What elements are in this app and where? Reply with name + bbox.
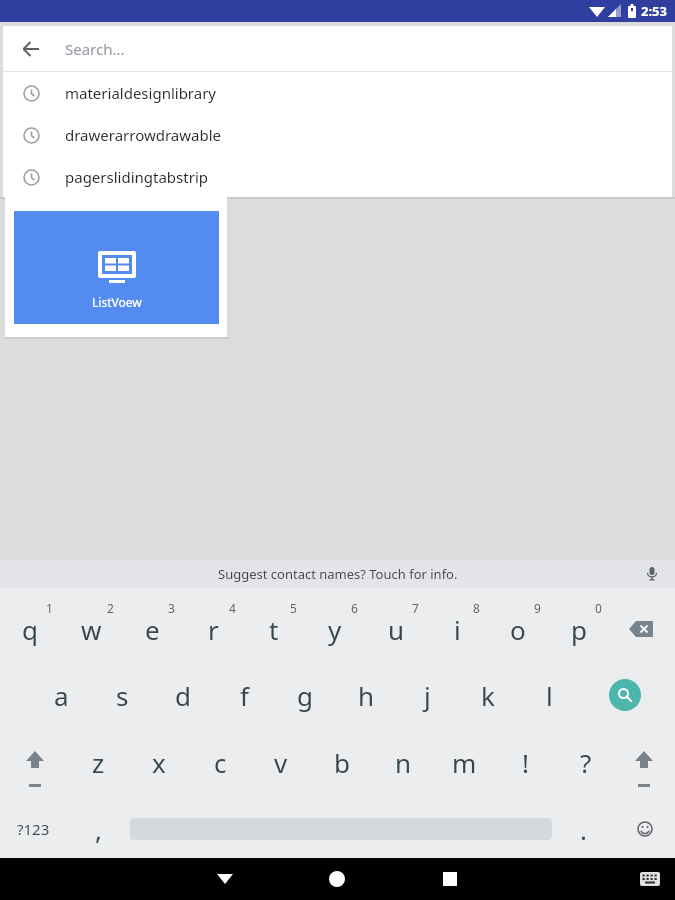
button[interactable]: q bbox=[8, 607, 52, 651]
button[interactable]: drawerarrowdrawable bbox=[3, 114, 672, 156]
button[interactable]: s bbox=[100, 673, 144, 717]
staticText: j bbox=[424, 678, 431, 713]
staticText: f bbox=[240, 678, 249, 713]
staticText: z bbox=[92, 745, 105, 780]
button[interactable]: . bbox=[561, 807, 605, 851]
staticText: r bbox=[208, 612, 219, 647]
staticText: h bbox=[358, 678, 375, 713]
button[interactable]: c bbox=[198, 740, 242, 784]
button[interactable]: e bbox=[130, 607, 174, 651]
staticText: materialdesignlibrary bbox=[65, 83, 217, 103]
button[interactable] bbox=[315, 858, 359, 900]
button[interactable]: b bbox=[320, 740, 364, 784]
button[interactable]: materialdesignlibrary bbox=[3, 72, 672, 114]
button[interactable]: t bbox=[252, 607, 296, 651]
button[interactable]: f bbox=[222, 673, 266, 717]
button[interactable]: , bbox=[76, 807, 120, 851]
staticText: u bbox=[388, 612, 405, 647]
button[interactable] bbox=[428, 858, 472, 900]
staticText: . bbox=[580, 812, 587, 847]
button[interactable]: ? bbox=[564, 740, 608, 784]
button[interactable]: a bbox=[39, 673, 83, 717]
staticText: n bbox=[395, 745, 412, 780]
button[interactable]: x bbox=[137, 740, 181, 784]
button[interactable]: m bbox=[442, 740, 486, 784]
button[interactable]: u bbox=[374, 607, 418, 651]
button[interactable]: pagerslidingtabstrip bbox=[3, 156, 672, 198]
staticText: 8 bbox=[473, 600, 480, 616]
staticText: 0 bbox=[595, 600, 602, 616]
staticText: 3 bbox=[168, 600, 175, 616]
button[interactable]: h bbox=[344, 673, 388, 717]
staticText: t bbox=[269, 612, 279, 647]
staticText: c bbox=[214, 745, 227, 780]
button[interactable] bbox=[619, 607, 663, 651]
staticText: ! bbox=[522, 745, 529, 780]
button[interactable]: ?123 bbox=[11, 807, 55, 851]
button[interactable]: y bbox=[313, 607, 357, 651]
staticText: 6 bbox=[351, 600, 358, 616]
button[interactable] bbox=[609, 679, 641, 711]
staticText: i bbox=[454, 612, 461, 647]
button[interactable] bbox=[13, 740, 57, 788]
staticText: 2 bbox=[107, 600, 114, 616]
staticText: m bbox=[452, 745, 477, 780]
staticText: o bbox=[510, 612, 526, 647]
button[interactable]: ! bbox=[503, 740, 547, 784]
button[interactable]: k bbox=[466, 673, 510, 717]
staticText: g bbox=[297, 678, 313, 713]
staticText: w bbox=[81, 612, 102, 647]
button[interactable] bbox=[203, 858, 247, 900]
staticText: l bbox=[546, 678, 553, 713]
staticText: p bbox=[571, 612, 587, 647]
button[interactable]: z bbox=[76, 740, 120, 784]
staticText: , bbox=[95, 812, 102, 847]
button[interactable]: j bbox=[405, 673, 449, 717]
staticText: e bbox=[145, 612, 160, 647]
button[interactable]: ListVoew bbox=[14, 211, 219, 324]
staticText: d bbox=[175, 678, 191, 713]
button[interactable] bbox=[645, 567, 659, 581]
staticText: q bbox=[22, 612, 38, 647]
button[interactable]: p bbox=[557, 607, 601, 651]
staticText: k bbox=[481, 678, 495, 713]
button[interactable]: g bbox=[283, 673, 327, 717]
button[interactable] bbox=[622, 740, 666, 788]
staticText: 9 bbox=[534, 600, 541, 616]
staticText: y bbox=[328, 612, 342, 647]
button[interactable]: d bbox=[161, 673, 205, 717]
staticText: pagerslidingtabstrip bbox=[65, 167, 208, 187]
staticText: 5 bbox=[290, 600, 297, 616]
button[interactable] bbox=[623, 807, 667, 851]
staticText: 2:53 bbox=[641, 2, 667, 20]
staticText: 4 bbox=[229, 600, 236, 616]
button[interactable]: r bbox=[191, 607, 235, 651]
button[interactable]: i bbox=[435, 607, 479, 651]
staticText: 7 bbox=[412, 600, 419, 616]
button[interactable]: n bbox=[381, 740, 425, 784]
button[interactable]: l bbox=[527, 673, 571, 717]
staticText: s bbox=[116, 678, 129, 713]
staticText: ListVoew bbox=[92, 294, 142, 310]
staticText: ?123 bbox=[17, 819, 50, 839]
staticText: drawerarrowdrawable bbox=[65, 125, 222, 145]
button[interactable]: v bbox=[259, 740, 303, 784]
button[interactable] bbox=[630, 858, 670, 900]
button[interactable]: o bbox=[496, 607, 540, 651]
button[interactable]: w bbox=[69, 607, 113, 651]
staticText: b bbox=[334, 745, 350, 780]
staticText: Search... bbox=[65, 39, 125, 59]
staticText: x bbox=[152, 745, 166, 780]
staticText: ? bbox=[580, 745, 592, 780]
button[interactable]: Search... bbox=[3, 26, 672, 71]
staticText: a bbox=[54, 678, 69, 713]
staticText: Suggest contact names? Touch for info. bbox=[218, 565, 458, 583]
staticText: v bbox=[274, 745, 288, 780]
staticText: 1 bbox=[46, 600, 53, 616]
